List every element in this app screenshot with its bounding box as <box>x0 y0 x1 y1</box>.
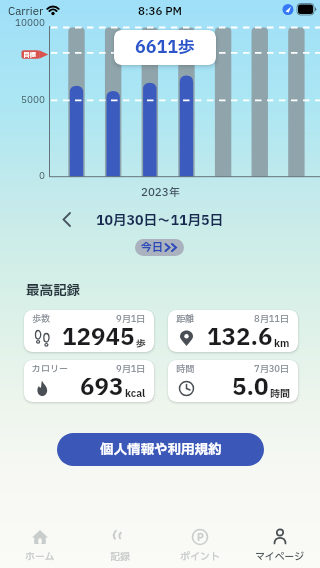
staticText: 目標 <box>23 50 36 60</box>
staticText: 8:36 PM <box>138 3 182 20</box>
staticText: 時間 <box>270 386 290 401</box>
staticText: 個人情報や利用規約 <box>100 440 222 460</box>
staticText: 5000 <box>21 93 45 107</box>
staticText: 時間 <box>176 362 195 375</box>
staticText: 2023年 <box>141 184 180 201</box>
staticText: P <box>197 530 204 545</box>
button[interactable]: マイページ <box>240 510 320 568</box>
staticText: 歩 <box>136 336 146 351</box>
staticText: 今日 <box>141 239 163 256</box>
button[interactable]: 記録 <box>80 510 160 568</box>
button[interactable]: カロリー <box>24 360 154 402</box>
button[interactable]: P <box>160 510 240 568</box>
staticText: 9月1日 <box>116 362 146 375</box>
staticText: 12945 <box>62 321 135 352</box>
staticText: 0 <box>39 169 45 183</box>
staticText: マイページ <box>255 549 305 564</box>
button[interactable]: 今日 <box>135 239 184 256</box>
button[interactable]: 個人情報や利用規約 <box>57 433 264 466</box>
staticText: カロリー <box>32 362 69 375</box>
staticText: 6611歩 <box>135 35 195 60</box>
staticText: 8月11日 <box>254 312 290 325</box>
staticText: ポイント <box>180 549 220 564</box>
button[interactable]: ホーム <box>0 510 80 568</box>
staticText: Carrier <box>8 3 44 20</box>
staticText: kcal <box>125 386 146 401</box>
staticText: km <box>274 336 290 351</box>
staticText: 9月1日 <box>116 312 146 325</box>
button[interactable]: 距離 <box>168 310 298 352</box>
button[interactable]: 時間 <box>168 360 298 402</box>
button[interactable] <box>55 207 79 232</box>
staticText: 最高記録 <box>26 281 80 301</box>
button[interactable]: 歩数 <box>24 310 154 352</box>
staticText: 距離 <box>176 312 195 325</box>
staticText: ホーム <box>25 549 55 564</box>
staticText: 10000 <box>15 16 45 30</box>
staticText: 7月30日 <box>254 362 290 375</box>
staticText: 132.6 <box>207 321 273 352</box>
staticText: 記録 <box>110 549 130 564</box>
staticText: 693 <box>80 371 124 402</box>
staticText: 5.0 <box>232 371 269 402</box>
staticText: 歩数 <box>32 312 51 325</box>
staticText: 10月30日〜11月5日 <box>96 211 224 231</box>
